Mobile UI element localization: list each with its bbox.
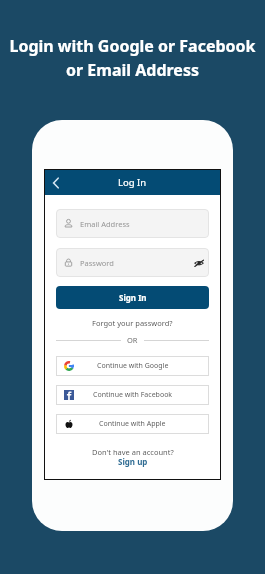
staticText: Password	[80, 258, 114, 268]
staticText: Sign up	[118, 456, 148, 467]
staticText: Sign In	[119, 292, 147, 303]
button[interactable]: Continue with Facebook	[56, 385, 209, 405]
button[interactable]: Back	[48, 175, 64, 191]
staticText: Email Address	[80, 219, 130, 229]
staticText: Don't have an account?	[92, 447, 174, 457]
button[interactable]: Sign In	[56, 286, 209, 309]
button[interactable]: Sign up	[118, 456, 148, 467]
button[interactable]: Forgot your password?	[56, 315, 209, 331]
button[interactable]: Continue with Google	[56, 356, 209, 376]
button[interactable]: Continue with Apple	[56, 414, 209, 434]
button[interactable]: Email Address	[56, 209, 209, 238]
staticText: Continue with Apple	[99, 419, 166, 429]
staticText: Continue with Facebook	[93, 390, 173, 400]
staticText: Continue with Google	[97, 361, 169, 371]
staticText: Forgot your password?	[92, 318, 173, 328]
staticText: Login with Google or Facebook or Email A…	[9, 35, 256, 81]
button[interactable]: Show password	[194, 258, 204, 268]
staticText: Log In	[118, 176, 147, 189]
staticText: OR	[127, 335, 138, 345]
button[interactable]: Password	[56, 248, 209, 277]
